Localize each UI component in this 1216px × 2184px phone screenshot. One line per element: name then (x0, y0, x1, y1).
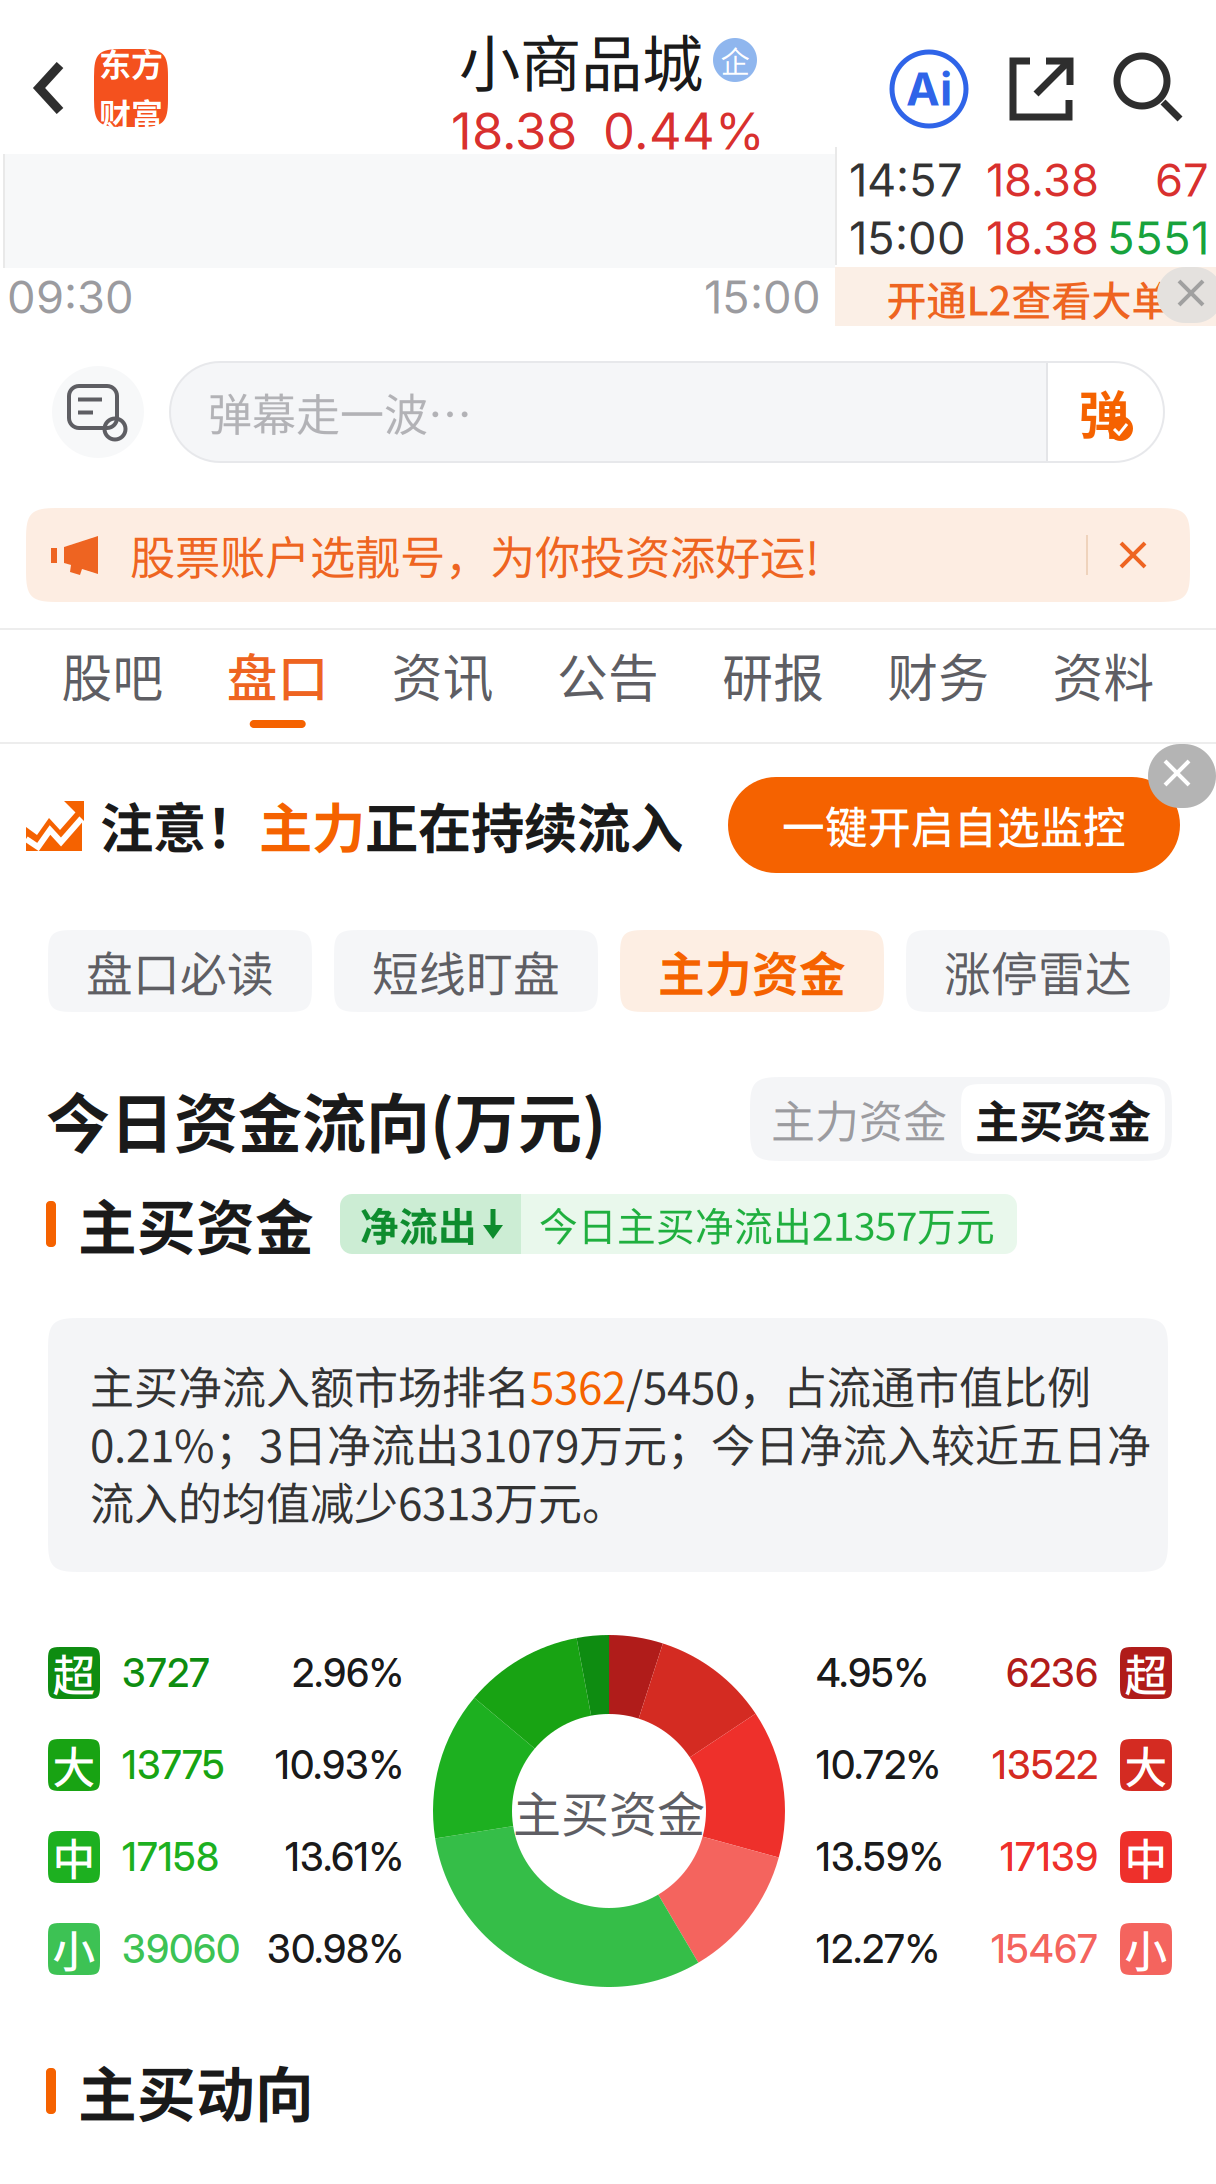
button[interactable]: 主力资金 (757, 1084, 961, 1154)
staticText: 涨停雷达 (944, 937, 1132, 1005)
staticText: 2.96% (292, 1650, 404, 1696)
staticText: 主力 (259, 786, 365, 864)
button[interactable]: 资讯 (360, 630, 525, 742)
staticText: 13522 (992, 1742, 1098, 1788)
button[interactable]: 主买资金 (961, 1084, 1165, 1154)
button[interactable]: 研报 (691, 630, 856, 742)
button[interactable]: Back (0, 0, 168, 150)
staticText: 5551 (1107, 211, 1209, 265)
staticText: 10.93% (275, 1742, 404, 1788)
staticText: 企 (720, 39, 749, 81)
staticText: 开通L2查看大单 (886, 269, 1171, 327)
staticText: 盘口必读 (86, 937, 274, 1005)
button[interactable]: 弹幕走一波… (170, 362, 1164, 462)
staticText: 小 (52, 1918, 95, 1980)
staticText: 主买净流入额市场排名 (90, 1353, 530, 1417)
staticText: 超 (1124, 1642, 1167, 1704)
button[interactable]: 开通L2查看大单 (835, 267, 1216, 329)
button[interactable]: 涨停雷达 (906, 930, 1170, 1012)
button[interactable]: Comments (52, 366, 144, 458)
staticText: 注意！ (100, 786, 259, 864)
button[interactable]: 公告 (525, 630, 690, 742)
staticText: 17158 (122, 1834, 219, 1880)
staticText: 09:30 (7, 270, 134, 324)
staticText: 公告 (557, 638, 659, 712)
staticText: 3727 (122, 1650, 210, 1696)
staticText: 今日主买净流出21357万元 (539, 1196, 995, 1252)
staticText: 正在持续流入 (365, 786, 683, 864)
staticText: 资讯 (392, 638, 494, 712)
staticText: 今日资金流向(万元) (46, 1073, 606, 1165)
button[interactable]: 盘口必读 (48, 930, 312, 1012)
staticText: 10.72% (816, 1742, 941, 1788)
button[interactable]: 股票账户选靓号，为你投资添好运! (0, 508, 1216, 602)
staticText: 0.21%；3日净流出31079万元；今日净流入较近五日净 (90, 1411, 1151, 1475)
button[interactable]: AI assistant (892, 52, 966, 126)
button[interactable]: 盘口 (195, 630, 360, 742)
button[interactable]: 主力资金 (620, 930, 884, 1012)
staticText: 中 (1124, 1826, 1167, 1888)
button[interactable]: Search (1116, 55, 1184, 123)
staticText: 39060 (122, 1926, 240, 1972)
staticText: 短线盯盘 (372, 937, 560, 1005)
staticText: 17139 (1000, 1834, 1098, 1880)
staticText: 13775 (122, 1742, 225, 1788)
staticText: 主买动向 (78, 2048, 314, 2133)
staticText: 5362 (530, 1353, 626, 1417)
staticText: 6236 (1006, 1650, 1098, 1696)
staticText: 超 (52, 1642, 95, 1704)
staticText: 财务 (887, 638, 989, 712)
staticText: 12.27% (816, 1926, 940, 1972)
staticText: 股吧 (62, 638, 164, 712)
staticText: 弹幕走一波… (208, 380, 472, 444)
staticText: 研报 (722, 638, 824, 712)
staticText: 财富 (99, 90, 163, 136)
button[interactable]: 短线盯盘 (334, 930, 598, 1012)
staticText: 主买资金 (975, 1087, 1151, 1151)
staticText: 18.38 (451, 100, 577, 162)
staticText: 资料 (1052, 638, 1154, 712)
button[interactable]: Close (1148, 744, 1216, 808)
staticText: /5450，占流通市值比例 (626, 1353, 1091, 1417)
staticText: 净流出 (360, 1196, 477, 1252)
staticText: 主力资金 (771, 1087, 947, 1151)
staticText: 15:00 (849, 211, 966, 265)
staticText: 13.61% (285, 1834, 404, 1880)
staticText: 盘口 (227, 638, 329, 712)
staticText: 股票账户选靓号，为你投资添好运! (130, 522, 820, 588)
staticText: 30.98% (267, 1926, 404, 1972)
staticText: 主力资金 (658, 937, 846, 1005)
staticText: 18.38 (986, 211, 1099, 265)
button[interactable]: 财务 (856, 630, 1021, 742)
staticText: 67 (1155, 153, 1209, 207)
staticText: 大 (1124, 1734, 1167, 1796)
staticText: 14:57 (849, 153, 963, 207)
staticText: 15467 (991, 1926, 1098, 1972)
staticText: 小商品城 (459, 16, 703, 104)
button[interactable]: Share (1008, 56, 1074, 122)
staticText: 一键开启自选监控 (782, 794, 1126, 856)
button[interactable]: 股吧 (30, 630, 195, 742)
staticText: Ai (906, 62, 952, 116)
staticText: 4.95% (816, 1650, 929, 1696)
staticText: 15:00 (704, 270, 821, 324)
staticText: 13.59% (816, 1834, 944, 1880)
staticText: 主买资金 (78, 1181, 314, 1266)
button[interactable]: Close (1157, 267, 1216, 323)
staticText: 弹 (1078, 375, 1129, 449)
button[interactable]: 资料 (1021, 630, 1186, 742)
button[interactable]: 一键开启自选监控 (728, 777, 1180, 873)
staticText: 0.44% (603, 100, 765, 162)
staticText: 中 (52, 1826, 95, 1888)
staticText: 主买资金 (513, 1776, 705, 1846)
staticText: 流入的均值减少6313万元。 (90, 1469, 626, 1533)
staticText: 小 (1124, 1918, 1167, 1980)
staticText: 东方 (99, 40, 163, 86)
staticText: 大 (52, 1734, 95, 1796)
staticText: 18.38 (986, 153, 1099, 207)
